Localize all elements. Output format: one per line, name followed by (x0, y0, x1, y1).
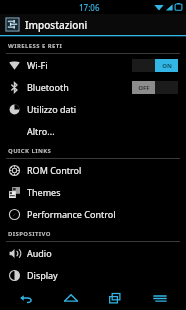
button[interactable]: Performance Control (0, 203, 186, 225)
staticText: DISPOSITIVO (8, 230, 51, 238)
staticText: Performance Control (27, 208, 116, 220)
button[interactable]: Menu (141, 286, 179, 310)
staticText: Wi-Fi (27, 59, 48, 71)
button[interactable]: Impostazioni (0, 14, 186, 35)
staticText: Utilizzo dati (27, 103, 77, 115)
staticText: OFF (138, 84, 150, 92)
staticText: Themes (27, 186, 61, 198)
button[interactable]: Home (52, 286, 90, 310)
button[interactable]: Bluetooth (0, 76, 186, 98)
button[interactable]: ROM Control (0, 159, 186, 181)
button[interactable]: Utilizzo dati (0, 98, 186, 120)
button[interactable]: Themes (0, 181, 186, 203)
button[interactable]: Off (132, 81, 178, 94)
staticText: Display (27, 269, 58, 281)
staticText: ROM Control (27, 164, 82, 176)
button[interactable]: On (132, 59, 178, 72)
staticText: Altro... (27, 125, 55, 137)
button[interactable]: Recents (96, 286, 134, 310)
button[interactable]: Wi-Fi (0, 54, 186, 76)
button[interactable]: Display (0, 264, 186, 286)
button[interactable]: Altro... (0, 120, 186, 142)
staticText: WIRELESS E RETI (8, 42, 63, 50)
staticText: 17:06 (79, 2, 100, 13)
staticText: Bluetooth (27, 81, 69, 93)
button[interactable]: Back (7, 286, 45, 310)
staticText: ON (162, 62, 172, 70)
staticText: Audio (27, 247, 52, 259)
staticText: QUICK LINKS (8, 147, 52, 155)
staticText: Impostazioni (25, 18, 88, 32)
button[interactable]: Audio (0, 242, 186, 264)
